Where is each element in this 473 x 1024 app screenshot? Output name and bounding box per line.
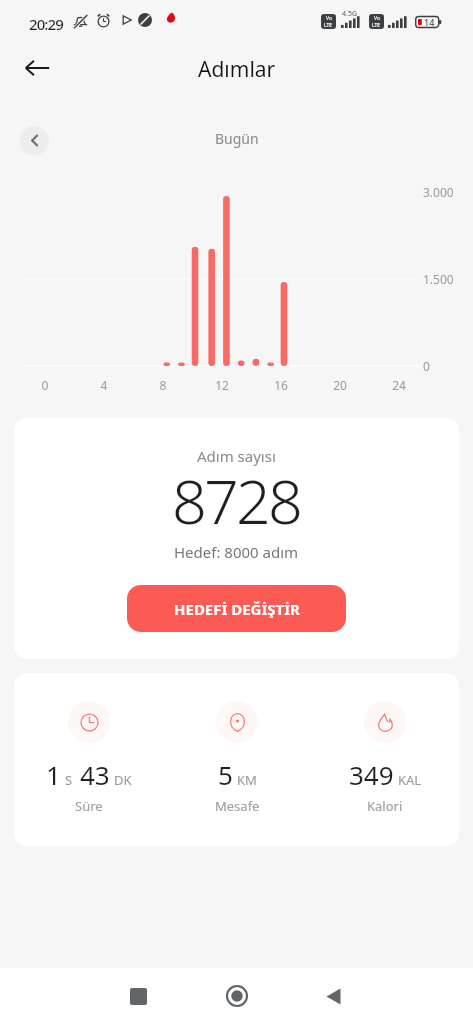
staticText: Kalori	[367, 797, 403, 815]
staticText: 0	[423, 358, 430, 374]
staticText: Adımlar	[198, 55, 276, 84]
button[interactable]: HEDEFİ DEĞİŞTİR	[127, 585, 346, 632]
staticText: 349	[349, 757, 394, 792]
button[interactable]: Back	[17, 48, 57, 88]
staticText: Bugün	[215, 129, 259, 148]
staticText: 20	[330, 377, 350, 393]
staticText: Mesafe	[215, 797, 260, 815]
staticText: 3.000	[423, 184, 454, 200]
staticText: 8	[153, 377, 173, 393]
staticText: 43	[80, 757, 110, 792]
staticText: 16	[271, 377, 291, 393]
staticText: Süre	[75, 797, 103, 815]
staticText: 5	[218, 757, 233, 792]
staticText: 4	[94, 377, 114, 393]
staticText: KAL	[398, 771, 422, 789]
staticText: 1.500	[423, 271, 454, 287]
staticText: S	[65, 771, 73, 789]
staticText: 14	[424, 16, 435, 28]
staticText: LTE	[372, 22, 381, 29]
staticText: 4.5G	[342, 9, 357, 19]
staticText: 0	[35, 377, 55, 393]
staticText: 20:29	[29, 14, 63, 34]
staticText: 1	[46, 757, 61, 792]
staticText: Hedef: 8000 adım	[174, 542, 299, 562]
staticText: DK	[114, 771, 132, 789]
staticText: Vo	[326, 15, 332, 22]
button[interactable]: Recents	[114, 972, 162, 1020]
staticText: Vo	[374, 15, 380, 22]
button[interactable]: Previous day	[20, 126, 49, 155]
staticText: KM	[237, 771, 257, 789]
staticText: 12	[212, 377, 232, 393]
staticText: 8728	[172, 459, 301, 542]
button[interactable]: Home	[213, 972, 261, 1020]
button[interactable]: Back	[309, 972, 357, 1020]
staticText: Adım sayısı	[197, 446, 276, 466]
staticText: HEDEFİ DEĞİŞTİR	[174, 599, 300, 619]
staticText: 24	[389, 377, 409, 393]
staticText: LTE	[324, 22, 333, 29]
